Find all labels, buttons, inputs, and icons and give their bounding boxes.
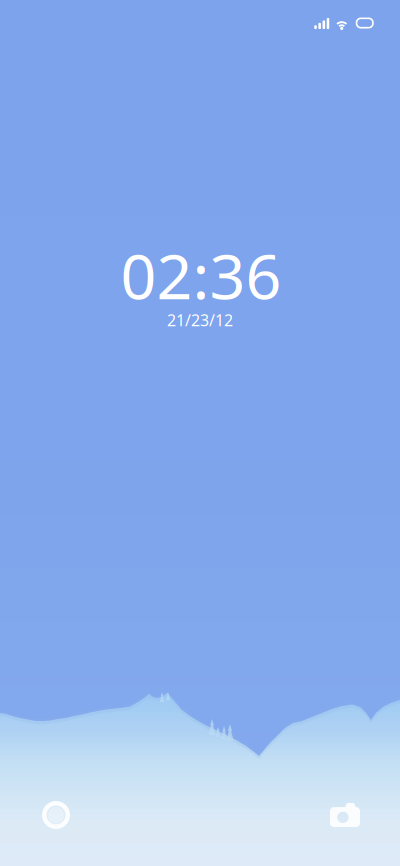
- staticText: 21/23/12: [167, 309, 233, 331]
- button[interactable]: Camera: [316, 786, 374, 844]
- staticText: 02:36: [120, 233, 281, 317]
- button[interactable]: Flashlight: [27, 786, 85, 844]
